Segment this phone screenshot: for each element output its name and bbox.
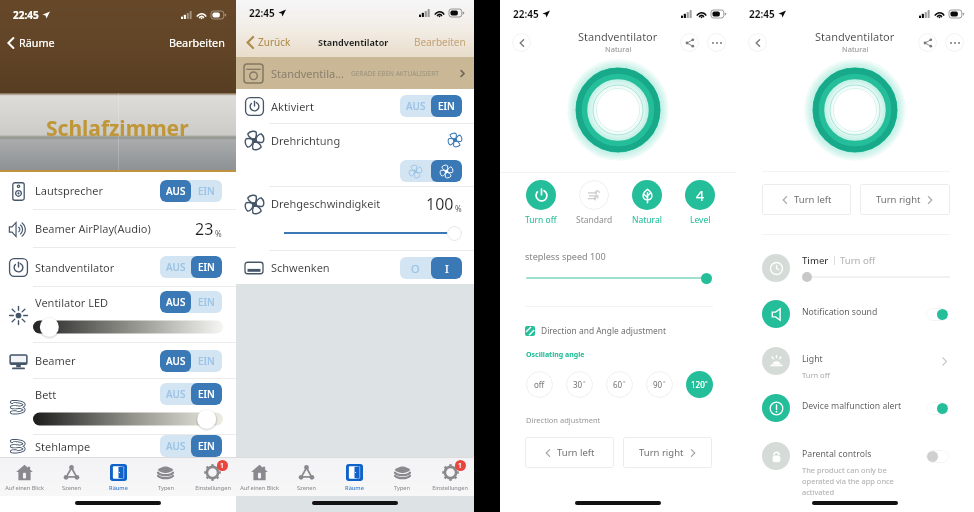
button[interactable]: Drehgeschwindigkeit (236, 187, 474, 251)
staticText: EIN (198, 184, 215, 198)
button[interactable]: Notification sound (926, 308, 949, 321)
button[interactable]: O (400, 257, 462, 279)
staticText: 22:45 (513, 7, 539, 21)
staticText: Level (690, 214, 711, 225)
button[interactable]: Räume (4, 35, 56, 50)
staticText: Räume (345, 484, 364, 492)
button[interactable]: Typen (378, 458, 426, 496)
staticText: Drehrichtung (271, 133, 341, 148)
staticText: 22:45 (249, 6, 275, 20)
staticText: EIN (198, 295, 215, 309)
button[interactable]: Bett (0, 379, 236, 435)
button[interactable]: Share (680, 33, 699, 52)
button[interactable]: Ventilator LED (0, 287, 236, 343)
staticText: Einstellungen (432, 484, 468, 492)
staticText: Standventilator (578, 29, 658, 44)
button[interactable]: Standventila... (244, 57, 466, 89)
button[interactable]: Drehrichtung (236, 124, 474, 187)
staticText: Aktiviert (271, 99, 314, 114)
staticText: Szenen (62, 484, 81, 492)
staticText: Turn off (802, 370, 830, 380)
button[interactable]: Back (748, 33, 767, 52)
staticText: GERADE EBEN AKTUALISIERT (351, 69, 439, 78)
button[interactable]: Timer (762, 254, 950, 282)
button[interactable]: Bearbeiten (169, 35, 225, 50)
button[interactable] (400, 160, 462, 182)
staticText: EIN (198, 387, 215, 401)
button[interactable]: Szenen (283, 458, 330, 496)
staticText: 1 (458, 461, 463, 471)
button[interactable]: Szenen (48, 458, 95, 496)
staticText: Auf einen Blick (5, 484, 44, 492)
button[interactable]: 30 (566, 371, 593, 398)
button[interactable]: Parental controls (762, 442, 949, 491)
staticText: Oscillating angle (526, 350, 585, 360)
staticText: Zurück (258, 35, 291, 49)
button[interactable]: More options (945, 33, 964, 52)
button[interactable]: off (526, 371, 553, 398)
button[interactable]: Räume (95, 458, 142, 496)
staticText: % (215, 228, 222, 239)
button[interactable]: Turn right (623, 437, 712, 468)
button[interactable]: AUS (160, 256, 222, 278)
button[interactable]: Turn left (525, 437, 614, 468)
staticText: AUS (166, 184, 186, 198)
staticText: Notification sound (802, 306, 878, 318)
staticText: 60 (613, 379, 623, 390)
button[interactable]: Zurück (242, 35, 293, 49)
button[interactable]: 4 (685, 180, 715, 225)
button[interactable]: Schwenken (244, 251, 462, 284)
button[interactable]: More options (707, 33, 726, 52)
staticText: EIN (438, 99, 455, 113)
staticText: O (411, 261, 420, 276)
button[interactable]: 1 (189, 458, 236, 496)
button[interactable]: Auf einen Blick (0, 458, 48, 496)
staticText: Turn left (794, 193, 832, 206)
button[interactable]: Natural (632, 180, 662, 225)
staticText: AUS (166, 387, 186, 401)
button[interactable]: Parental controls (926, 450, 949, 463)
button[interactable]: 90 (646, 371, 673, 398)
staticText: Drehgeschwindigkeit (271, 196, 381, 211)
button[interactable]: 1 (426, 458, 474, 496)
button[interactable]: Share (918, 33, 937, 52)
button[interactable]: Beamer (0, 343, 236, 379)
button[interactable]: AUS (160, 435, 222, 457)
staticText: Turn off (840, 254, 876, 267)
button[interactable]: Standventilator (0, 248, 236, 287)
button[interactable]: Lautsprecher (0, 172, 236, 210)
button[interactable]: Light (762, 347, 949, 375)
button[interactable]: AUS (160, 180, 222, 202)
button[interactable]: Aktiviert (236, 89, 474, 124)
button[interactable]: Device malfunction alert (762, 394, 949, 422)
button[interactable]: Räume (330, 458, 378, 496)
staticText: ° (623, 379, 626, 387)
button[interactable]: Turn off (526, 180, 556, 225)
button[interactable]: Back (512, 33, 531, 52)
staticText: Natural (842, 44, 869, 54)
staticText: Standventila... (271, 66, 344, 81)
button[interactable]: 60 (606, 371, 633, 398)
staticText: Einstellungen (195, 484, 231, 492)
button[interactable]: AUS (400, 95, 462, 117)
button[interactable]: AUS (160, 291, 222, 313)
button[interactable]: Notification sound (762, 300, 949, 328)
staticText: Natural (632, 214, 662, 225)
button[interactable]: Turn left (762, 184, 851, 215)
staticText: ° (583, 379, 586, 387)
staticText: Device malfunction alert (802, 400, 902, 412)
staticText: Turn right (876, 193, 921, 206)
button[interactable]: 120 (686, 371, 713, 398)
staticText: Räume (19, 35, 55, 50)
button[interactable]: AUS (160, 350, 222, 372)
button[interactable]: AUS (160, 383, 222, 405)
button[interactable]: Auf einen Blick (236, 458, 283, 496)
button[interactable]: Stehlampe (0, 435, 236, 457)
staticText: Standventilator (35, 260, 115, 275)
button[interactable]: Device malfunction alert (926, 402, 949, 415)
button[interactable]: Typen (142, 458, 189, 496)
button[interactable]: Bearbeiten (414, 35, 466, 49)
button[interactable]: Turn right (860, 184, 950, 215)
button[interactable]: Standard (579, 180, 609, 225)
button[interactable]: Beamer AirPlay(Audio) (0, 210, 236, 248)
